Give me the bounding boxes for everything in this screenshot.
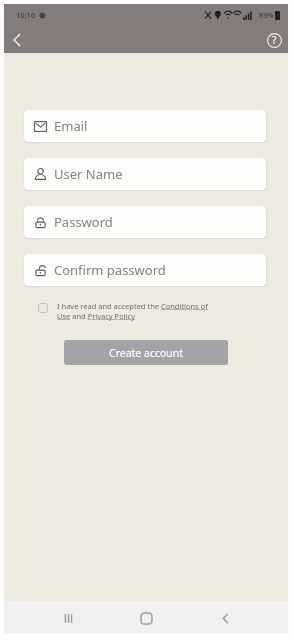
button[interactable]: User Name [24, 158, 266, 190]
button[interactable]: Recent apps [53, 603, 83, 633]
button[interactable]: Confirm password [24, 254, 266, 286]
staticText: 89% [259, 10, 274, 20]
staticText: Create account [109, 346, 184, 360]
staticText: Confirm password [54, 261, 166, 279]
staticText: 10:16 [16, 10, 36, 20]
button[interactable]: Email [24, 110, 266, 142]
button[interactable]: Home [131, 603, 161, 633]
button[interactable]: Back [6, 29, 28, 51]
button[interactable]: Help [263, 29, 285, 51]
staticText: ? [272, 33, 277, 47]
button[interactable]: Back [210, 603, 240, 633]
staticText: Email [54, 117, 88, 135]
staticText: User Name [54, 165, 123, 183]
staticText: I have read and accepted the Conditions … [57, 301, 208, 321]
button[interactable]: Create account [64, 340, 228, 365]
staticText: Password [54, 213, 113, 231]
button[interactable]: Password [24, 206, 266, 238]
button[interactable]: Accept terms and conditions [38, 303, 48, 313]
